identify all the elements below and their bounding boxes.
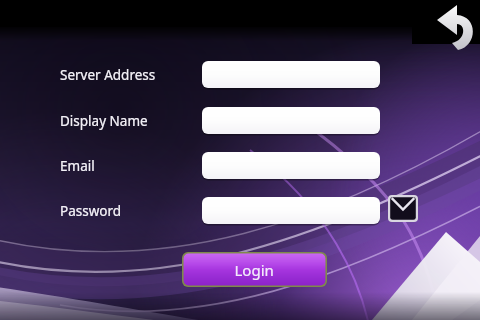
other: Show password	[0, 0, 480, 320]
button[interactable]	[0, 0, 480, 320]
button[interactable]	[0, 0, 480, 320]
button[interactable]	[0, 0, 480, 320]
button[interactable]	[0, 0, 480, 320]
button[interactable]: Back	[0, 0, 480, 320]
button[interactable]	[0, 0, 480, 320]
